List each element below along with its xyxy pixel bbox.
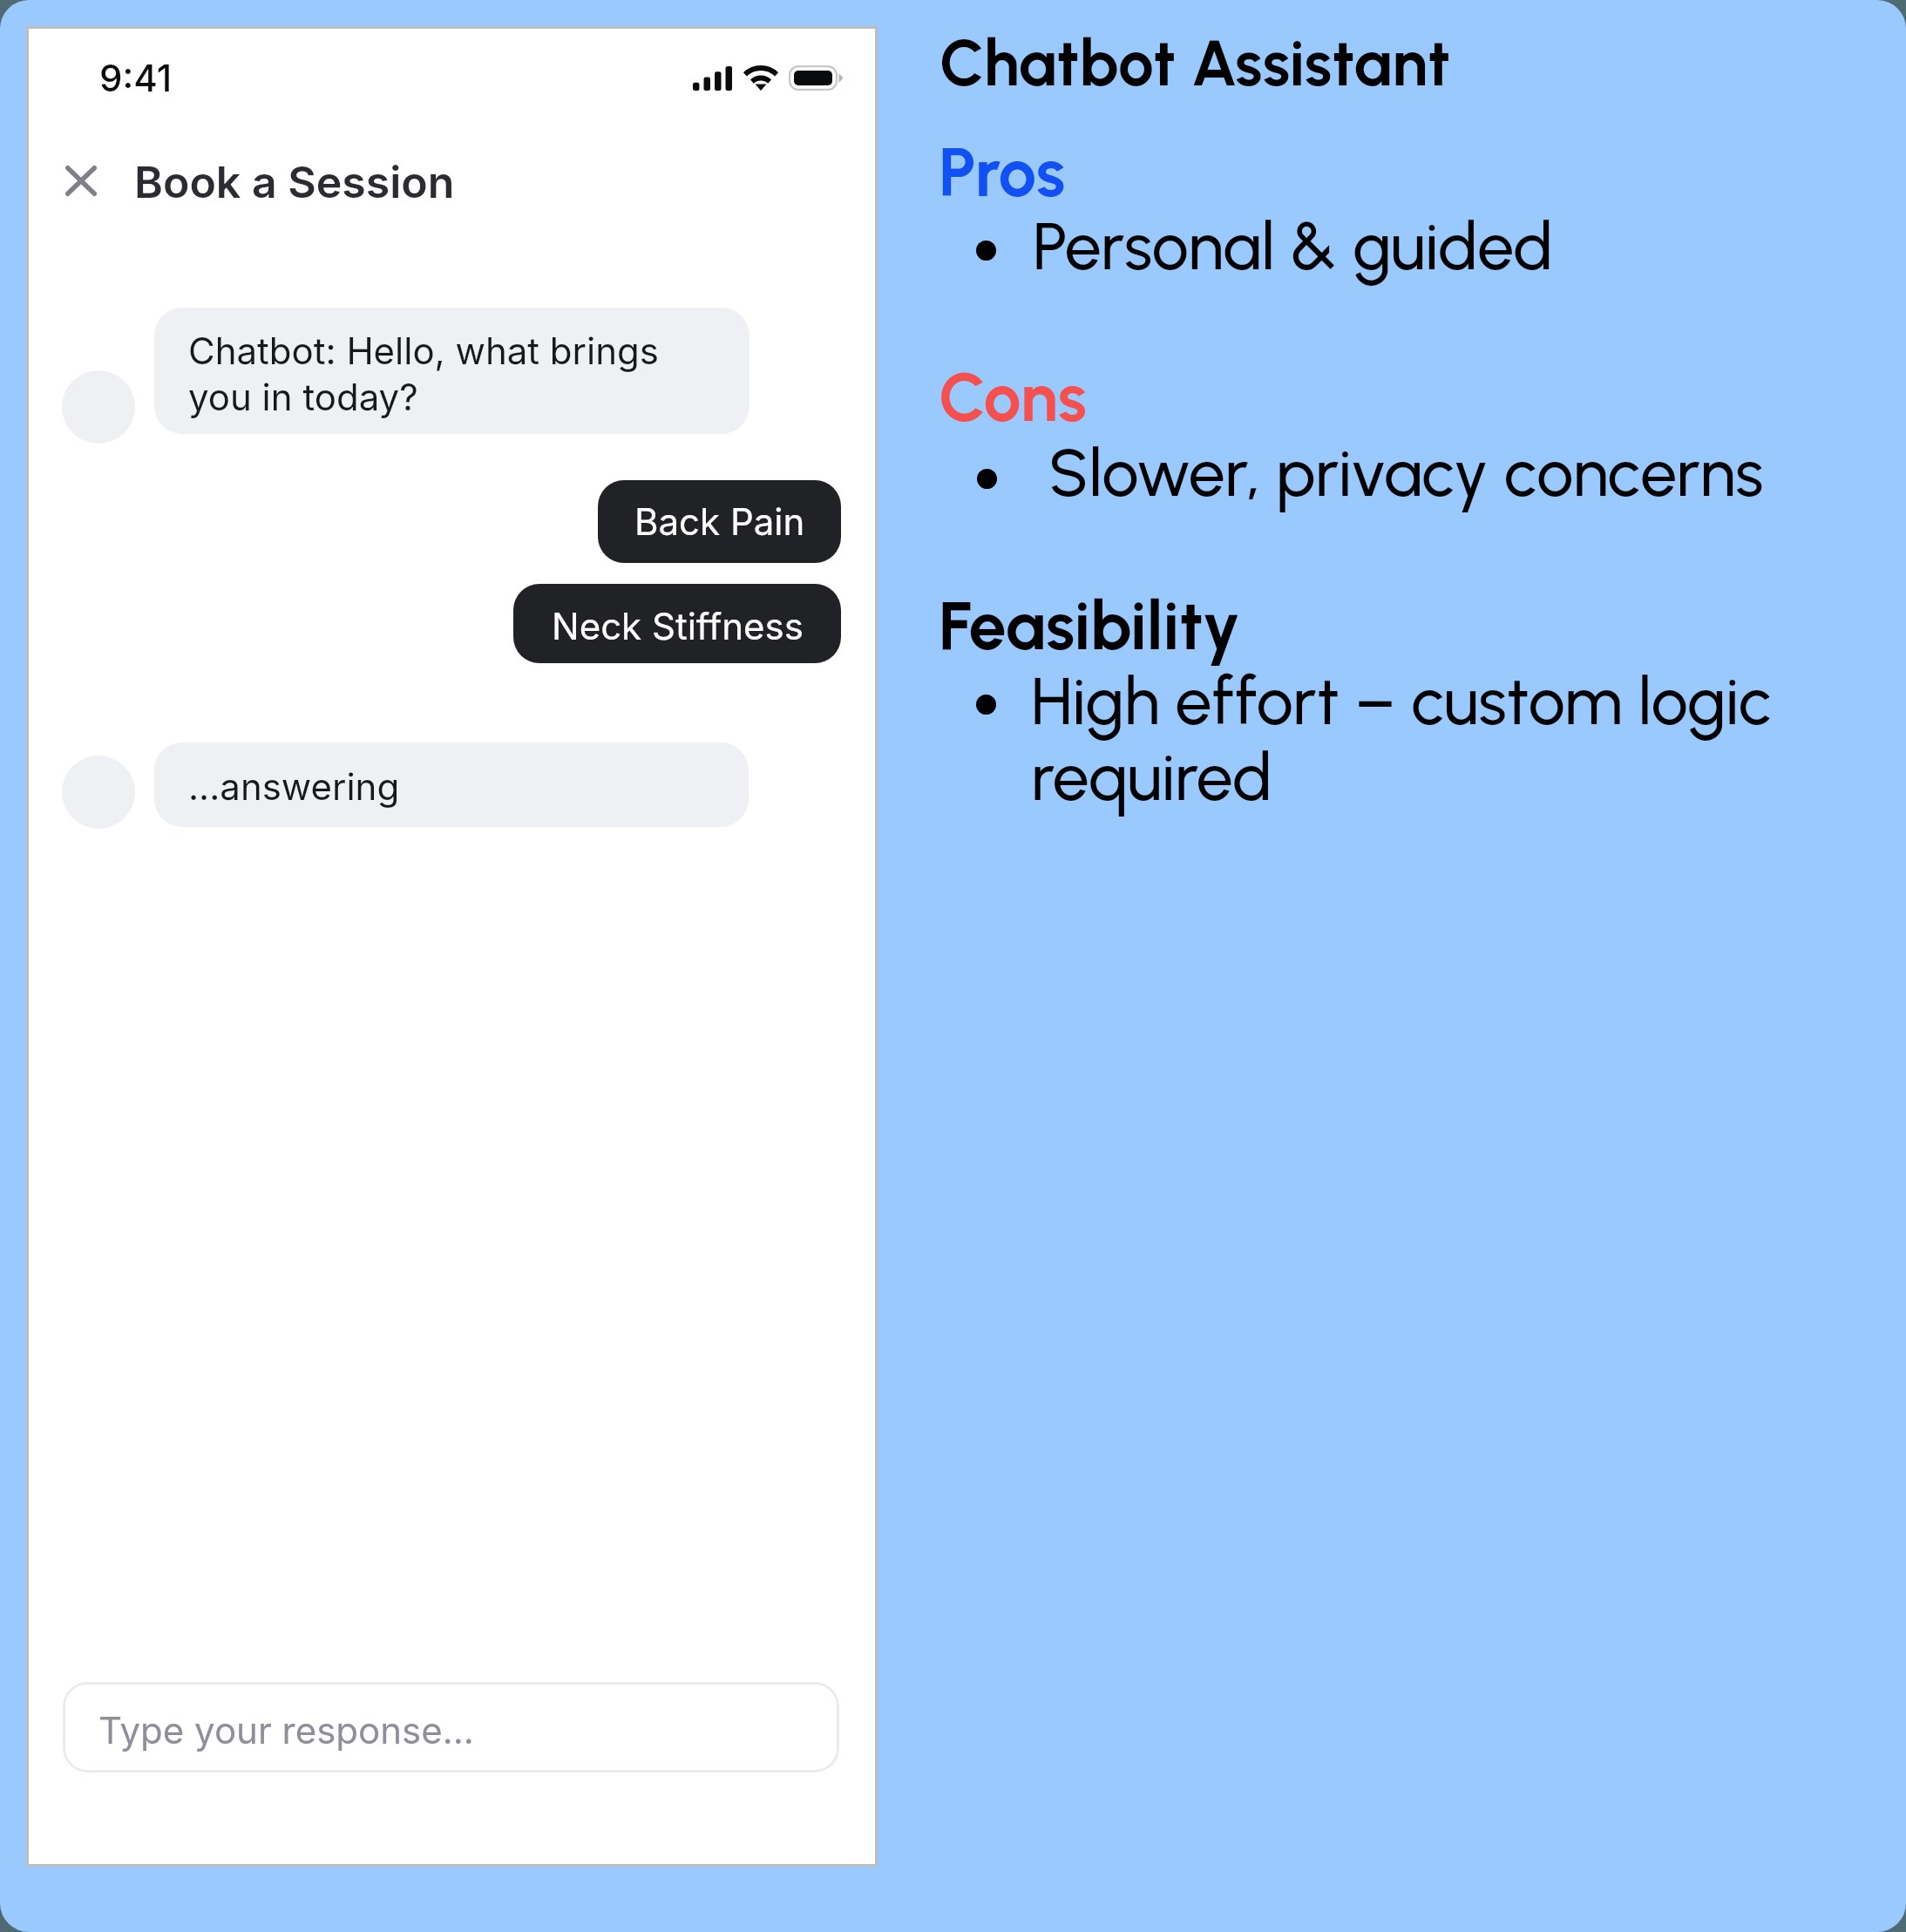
staticText: ...answering — [188, 764, 400, 809]
button[interactable] — [154, 742, 749, 827]
button[interactable]: Book a Session — [134, 156, 455, 208]
staticText: High effort – custom logic required — [1031, 662, 1773, 817]
staticText: Chatbot: Hello, what brings you in today… — [188, 329, 659, 419]
staticText: Pros — [939, 132, 1066, 214]
button[interactable] — [154, 308, 750, 434]
staticText: Book a Session — [134, 156, 455, 208]
staticText: Type your response... — [98, 1708, 474, 1752]
staticText: Slower, privacy concerns — [1048, 434, 1764, 512]
button[interactable]: Close — [51, 150, 112, 211]
button[interactable]: Neck Stiffness — [513, 584, 841, 663]
button[interactable]: Back Pain — [598, 480, 841, 563]
staticText: Chatbot Assistant — [939, 25, 1451, 102]
staticText: Neck Stiffness — [552, 604, 804, 648]
staticText: Feasibility — [939, 586, 1241, 666]
staticText: Cons — [939, 357, 1088, 437]
staticText: Back Pain — [634, 499, 805, 544]
staticText: Personal & guided — [1033, 207, 1553, 286]
staticText: 9:41 — [99, 56, 173, 100]
button[interactable]: Type your response... — [63, 1682, 839, 1773]
